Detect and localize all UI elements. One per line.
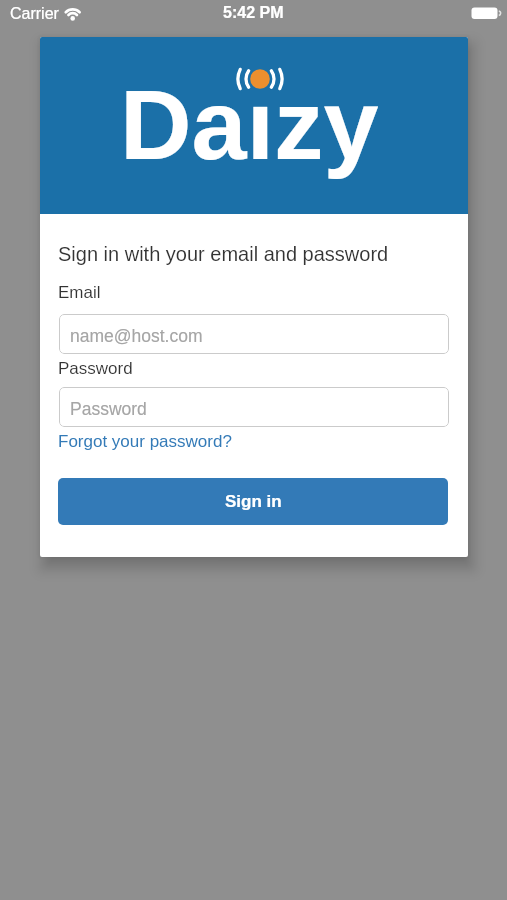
button[interactable]: name@host.com — [59, 314, 449, 354]
button[interactable]: Sign in — [58, 478, 448, 525]
button[interactable]: Forgot your password? — [58, 432, 232, 451]
staticText: name@host.com — [70, 326, 203, 346]
staticText: 5:42 PM — [223, 4, 284, 22]
staticText: Password — [70, 399, 147, 419]
staticText: Sign in — [225, 492, 282, 511]
staticText: Carrier — [10, 5, 59, 23]
button[interactable]: Password — [59, 387, 449, 427]
staticText: Sign in with your email and password — [58, 243, 389, 265]
staticText: Daızy — [120, 69, 379, 180]
staticText: Password — [58, 359, 133, 378]
staticText: Email — [58, 283, 101, 302]
